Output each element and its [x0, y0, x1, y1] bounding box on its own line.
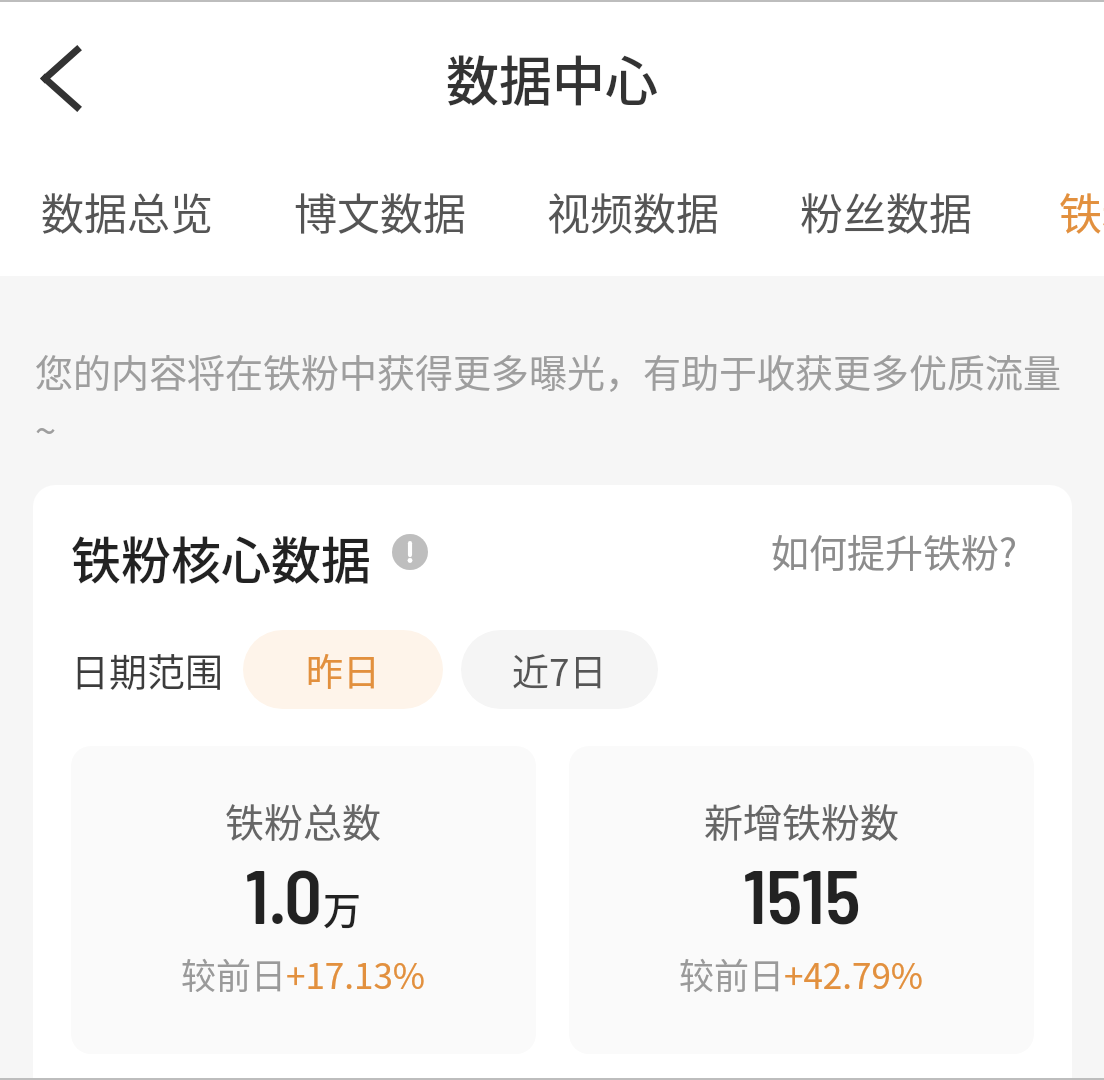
staticText: 您的内容将在铁粉中获得更多曝光，有助于收获更多优质流量~	[35, 343, 1075, 456]
staticText: 较前日+42.79%	[679, 948, 924, 999]
staticText: 近7日	[512, 643, 607, 697]
button[interactable]: 昨日	[243, 630, 443, 709]
button[interactable]: 博文数据	[253, 152, 506, 276]
staticText: 铁粉总数	[225, 792, 382, 848]
staticText: 铁粉核心数据	[71, 521, 371, 593]
button[interactable]: 铁粉数据	[1012, 152, 1104, 276]
staticText: 铁粉数据	[1059, 180, 1104, 242]
staticText: 日期范围	[71, 642, 224, 697]
button[interactable]: 新增铁粉数	[569, 746, 1034, 1054]
staticText: 视频数据	[547, 180, 719, 242]
button[interactable]: 数据总览	[0, 152, 253, 276]
staticText: 新增铁粉数	[704, 792, 900, 848]
staticText: 数据中心	[446, 40, 658, 117]
staticText: 如何提升铁粉?	[771, 523, 1018, 578]
staticText: 万	[323, 880, 362, 935]
staticText: 数据总览	[41, 180, 213, 242]
staticText: 昨日	[306, 643, 380, 697]
button[interactable]: 铁粉总数	[71, 746, 536, 1054]
button[interactable]: Back	[12, 30, 110, 128]
button[interactable]: 粉丝数据	[759, 152, 1012, 276]
staticText: 博文数据	[294, 180, 466, 242]
staticText: 较前日+17.13%	[181, 948, 426, 999]
button[interactable]: 近7日	[461, 630, 658, 709]
button[interactable]: 视频数据	[506, 152, 759, 276]
button[interactable]: Info	[392, 534, 428, 570]
staticText: 1.0	[245, 849, 323, 939]
staticText: 1515	[743, 849, 861, 939]
staticText: 粉丝数据	[800, 180, 972, 242]
button[interactable]: 如何提升铁粉?	[761, 513, 1028, 588]
